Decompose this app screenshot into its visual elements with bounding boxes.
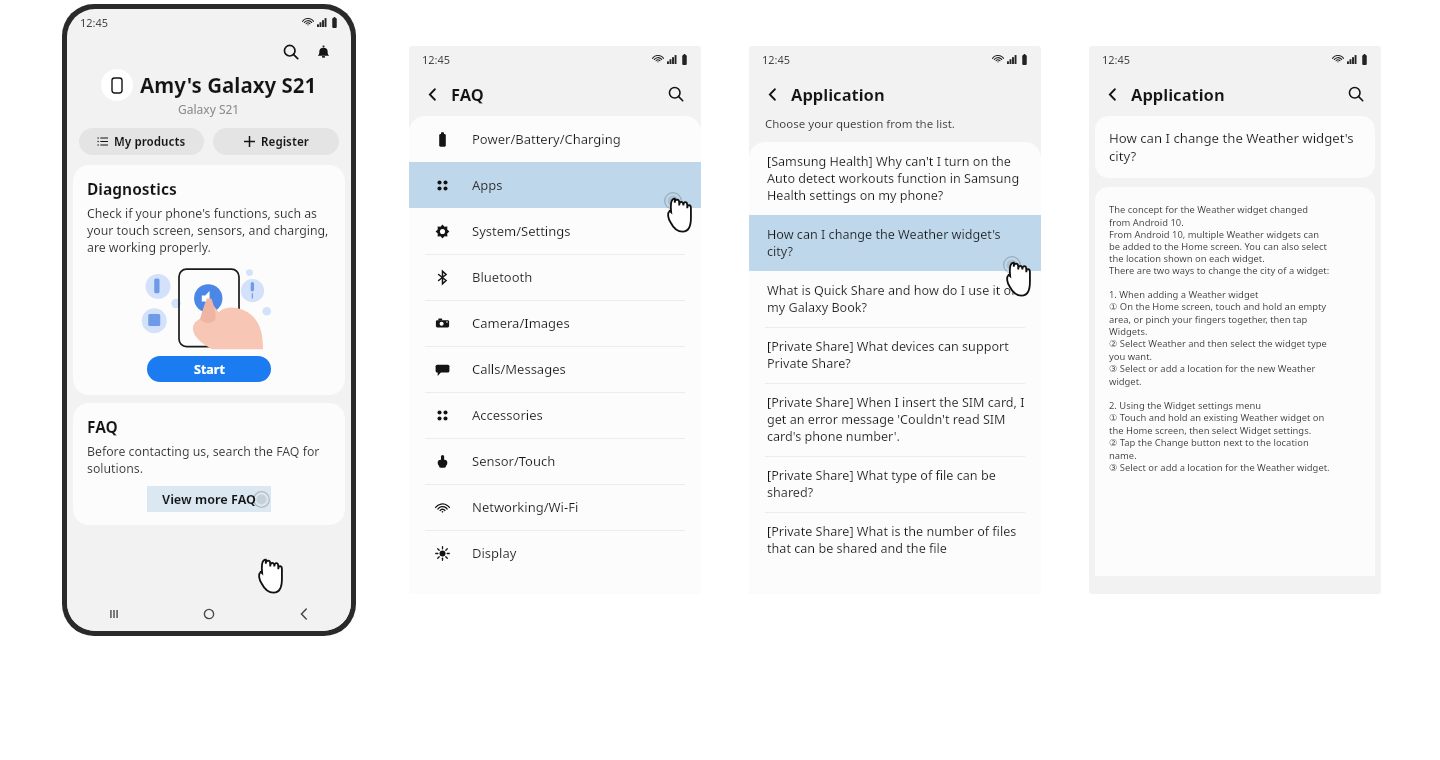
staticText: Apps: [472, 176, 503, 194]
staticText: Check if your phone's functions, such as…: [87, 205, 331, 256]
staticText: [Private Share] What is the number of fi…: [767, 523, 1027, 557]
button[interactable]: Start: [147, 356, 271, 382]
button[interactable]: back: [256, 597, 351, 631]
button[interactable]: Back: [757, 79, 787, 109]
staticText: Start: [194, 361, 225, 378]
button[interactable]: Notifications: [309, 38, 337, 66]
staticText: FAQ: [87, 416, 118, 437]
button[interactable]: [Private Share] What devices can support…: [749, 327, 1041, 383]
button[interactable]: System/Settings: [409, 208, 701, 254]
staticText: How can I change the Weather widget's ci…: [767, 226, 1027, 260]
staticText: 12:45: [80, 15, 109, 30]
button[interactable]: [Samsung Health] Why can't I turn on the…: [749, 142, 1041, 215]
button[interactable]: Back: [1097, 79, 1127, 109]
staticText: Register: [261, 134, 309, 150]
button[interactable]: Search: [1341, 79, 1371, 109]
staticText: [Samsung Health] Why can't I turn on the…: [767, 153, 1027, 204]
staticText: Accessories: [472, 406, 543, 424]
staticText: 12:45: [762, 52, 791, 67]
staticText: FAQ: [451, 83, 484, 105]
staticText: Application: [1131, 83, 1225, 105]
staticText: [Private Share] What devices can support…: [767, 338, 1027, 372]
button[interactable]: What is Quick Share and how do I use it …: [749, 271, 1041, 327]
button[interactable]: Bluetooth: [409, 254, 701, 300]
staticText: 12:45: [422, 52, 451, 67]
button[interactable]: Register: [213, 128, 339, 155]
button[interactable]: View more FAQ: [147, 486, 271, 512]
staticText: Sensor/Touch: [472, 452, 556, 470]
staticText: System/Settings: [472, 222, 571, 240]
button[interactable]: Back: [417, 79, 447, 109]
button[interactable]: Search: [661, 79, 691, 109]
staticText: My products: [114, 134, 186, 150]
button[interactable]: [Private Share] What is the number of fi…: [749, 512, 1041, 568]
button[interactable]: recents: [67, 597, 161, 631]
staticText: Amy's Galaxy S21: [140, 71, 317, 99]
staticText: Calls/Messages: [472, 360, 566, 378]
button[interactable]: Networking/Wi-Fi: [409, 484, 701, 530]
staticText: Power/Battery/Charging: [472, 130, 621, 148]
staticText: [Private Share] What type of file can be…: [767, 467, 1027, 501]
button[interactable]: My products: [79, 128, 204, 155]
staticText: Networking/Wi-Fi: [472, 498, 579, 516]
staticText: View more FAQ: [162, 491, 256, 508]
staticText: Choose your question from the list.: [765, 116, 955, 132]
staticText: What is Quick Share and how do I use it …: [767, 282, 1027, 316]
button[interactable]: Display: [409, 530, 701, 576]
button[interactable]: Accessories: [409, 392, 701, 438]
staticText: 12:45: [1102, 52, 1131, 67]
button[interactable]: home: [161, 597, 256, 631]
button[interactable]: Sensor/Touch: [409, 438, 701, 484]
staticText: Application: [791, 83, 885, 105]
button[interactable]: Calls/Messages: [409, 346, 701, 392]
staticText: How can I change the Weather widget's ci…: [1109, 129, 1361, 165]
staticText: Display: [472, 544, 517, 562]
staticText: Bluetooth: [472, 268, 533, 286]
staticText: [Private Share] When I insert the SIM ca…: [767, 394, 1027, 445]
button[interactable]: [Private Share] What type of file can be…: [749, 456, 1041, 512]
button[interactable]: Camera/Images: [409, 300, 701, 346]
staticText: Before contacting us, search the FAQ for…: [87, 443, 331, 477]
button[interactable]: Search: [277, 38, 305, 66]
staticText: The concept for the Weather widget chang…: [1109, 203, 1330, 474]
button[interactable]: Power/Battery/Charging: [409, 116, 701, 162]
staticText: Diagnostics: [87, 178, 177, 199]
button[interactable]: How can I change the Weather widget's ci…: [749, 215, 1041, 271]
staticText: Camera/Images: [472, 314, 570, 332]
button[interactable]: [Private Share] When I insert the SIM ca…: [749, 383, 1041, 456]
button[interactable]: Apps: [409, 162, 701, 208]
staticText: Galaxy S21: [178, 101, 240, 117]
